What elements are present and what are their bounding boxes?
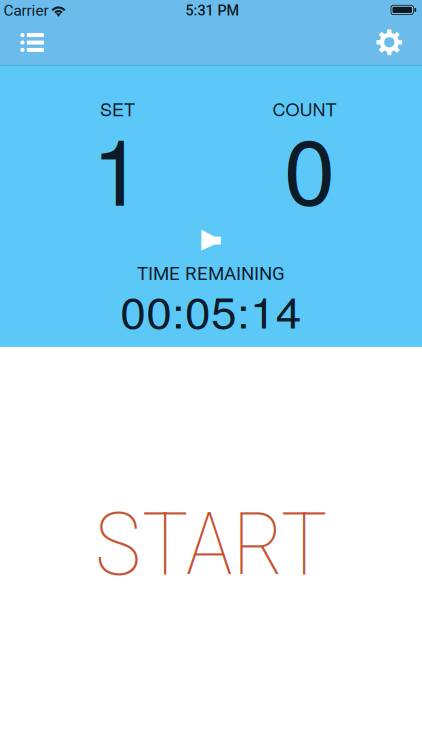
button[interactable]: Settings xyxy=(360,20,418,64)
staticText: TIME REMAINING xyxy=(137,263,285,284)
staticText: 5:31 PM xyxy=(186,2,240,19)
staticText: 1 xyxy=(92,100,143,232)
staticText: 0 xyxy=(284,100,335,232)
button[interactable]: Workouts list xyxy=(3,20,61,64)
staticText: START xyxy=(94,494,327,596)
staticText: 00:05:14 xyxy=(127,279,295,341)
button[interactable]: START xyxy=(0,445,422,645)
staticText: SET xyxy=(100,96,135,121)
staticText: COUNT xyxy=(272,96,336,121)
staticText: Carrier xyxy=(3,1,48,19)
